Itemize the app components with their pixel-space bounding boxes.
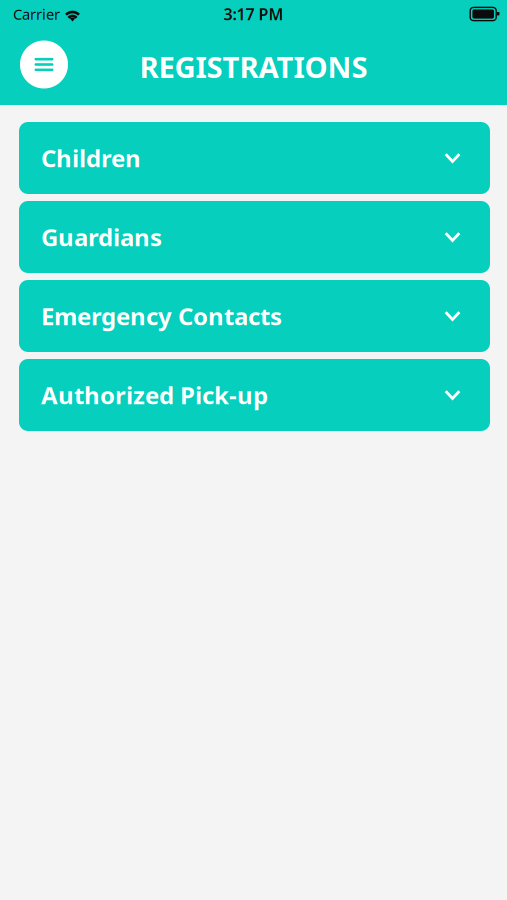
button[interactable]: Menu xyxy=(20,42,68,90)
staticText: 3:17 PM xyxy=(223,3,283,25)
button[interactable]: Children xyxy=(19,122,490,194)
staticText: REGISTRATIONS xyxy=(139,47,367,86)
staticText: Authorized Pick-up xyxy=(41,379,268,411)
button[interactable]: Emergency Contacts xyxy=(19,280,490,352)
staticText: Carrier xyxy=(13,4,60,24)
button[interactable]: Guardians xyxy=(19,201,490,273)
staticText: Children xyxy=(41,142,141,174)
staticText: Guardians xyxy=(41,221,162,253)
staticText: Emergency Contacts xyxy=(41,300,282,332)
button[interactable]: Authorized Pick-up xyxy=(19,359,490,431)
